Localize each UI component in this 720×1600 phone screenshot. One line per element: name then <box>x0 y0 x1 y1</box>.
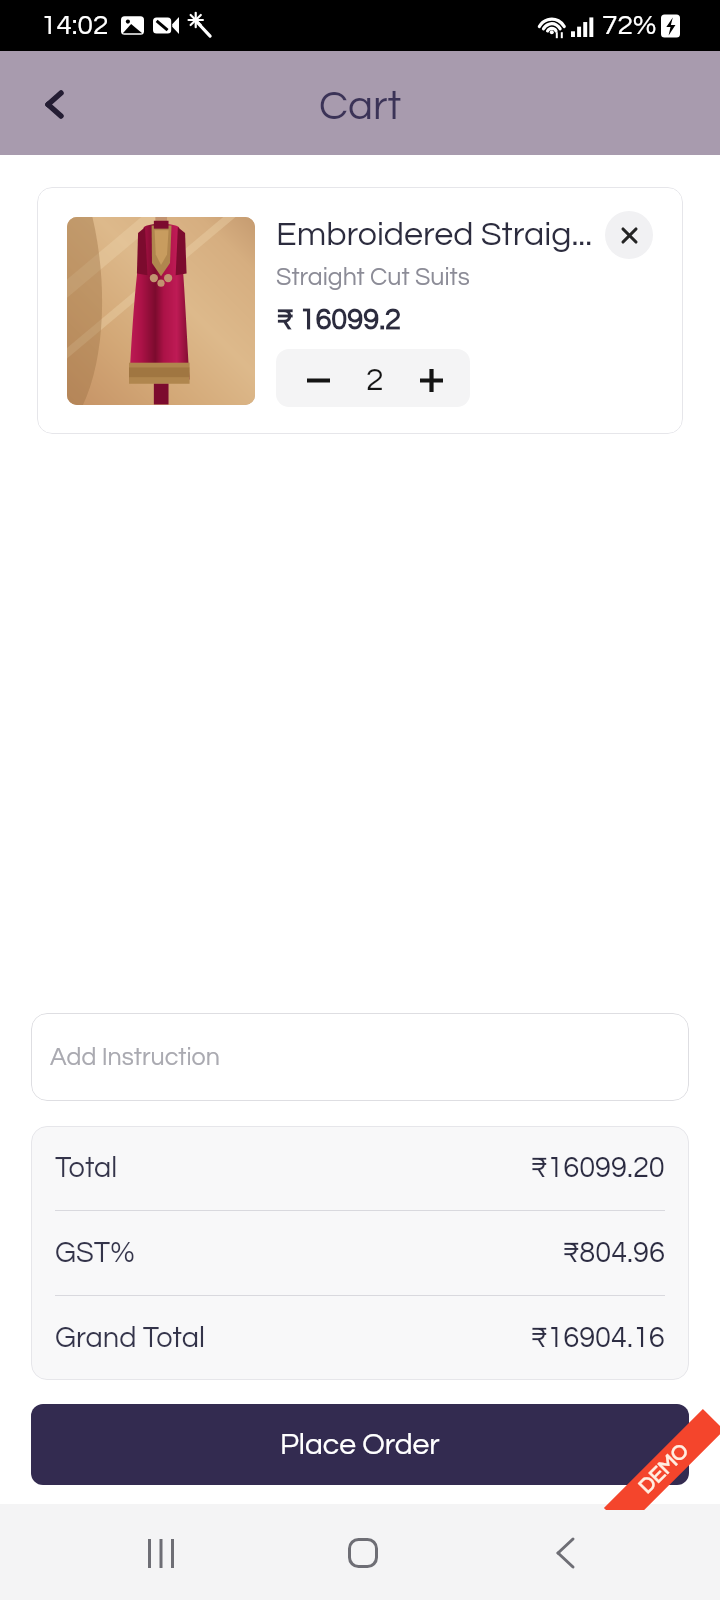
button[interactable]: Add Instruction <box>31 1013 689 1101</box>
button[interactable]: Embroidered Straig... <box>37 187 683 434</box>
staticText: GST% <box>55 1238 135 1268</box>
button[interactable]: Increase quantity <box>406 349 470 407</box>
staticText: ₹804.96 <box>562 1238 665 1268</box>
staticText: Place Order <box>280 1429 440 1460</box>
button[interactable]: Recent apps <box>101 1504 221 1600</box>
staticText: Add Instruction <box>50 1044 220 1070</box>
staticText: Cart <box>319 85 402 128</box>
staticText: Grand Total <box>55 1323 205 1353</box>
button[interactable]: Back <box>18 69 86 137</box>
staticText: 14:02 <box>41 11 109 40</box>
button[interactable]: Home <box>302 1504 422 1600</box>
staticText: Embroidered Straig... <box>276 217 593 252</box>
staticText: ₹16904.16 <box>530 1323 665 1353</box>
staticText: ₹ 16099.2 <box>276 305 402 335</box>
staticText: ₹16099.20 <box>530 1153 665 1183</box>
staticText: Total <box>55 1153 118 1183</box>
staticText: DEMO <box>635 1439 694 1498</box>
button[interactable]: Remove item <box>605 211 653 259</box>
button[interactable]: Back <box>505 1504 625 1600</box>
staticText: Straight Cut Suits <box>276 264 470 290</box>
button[interactable]: Decrease quantity <box>276 349 340 407</box>
button[interactable]: Place Order <box>31 1404 689 1485</box>
staticText: 72% <box>602 11 657 40</box>
staticText: 2 <box>366 364 384 397</box>
